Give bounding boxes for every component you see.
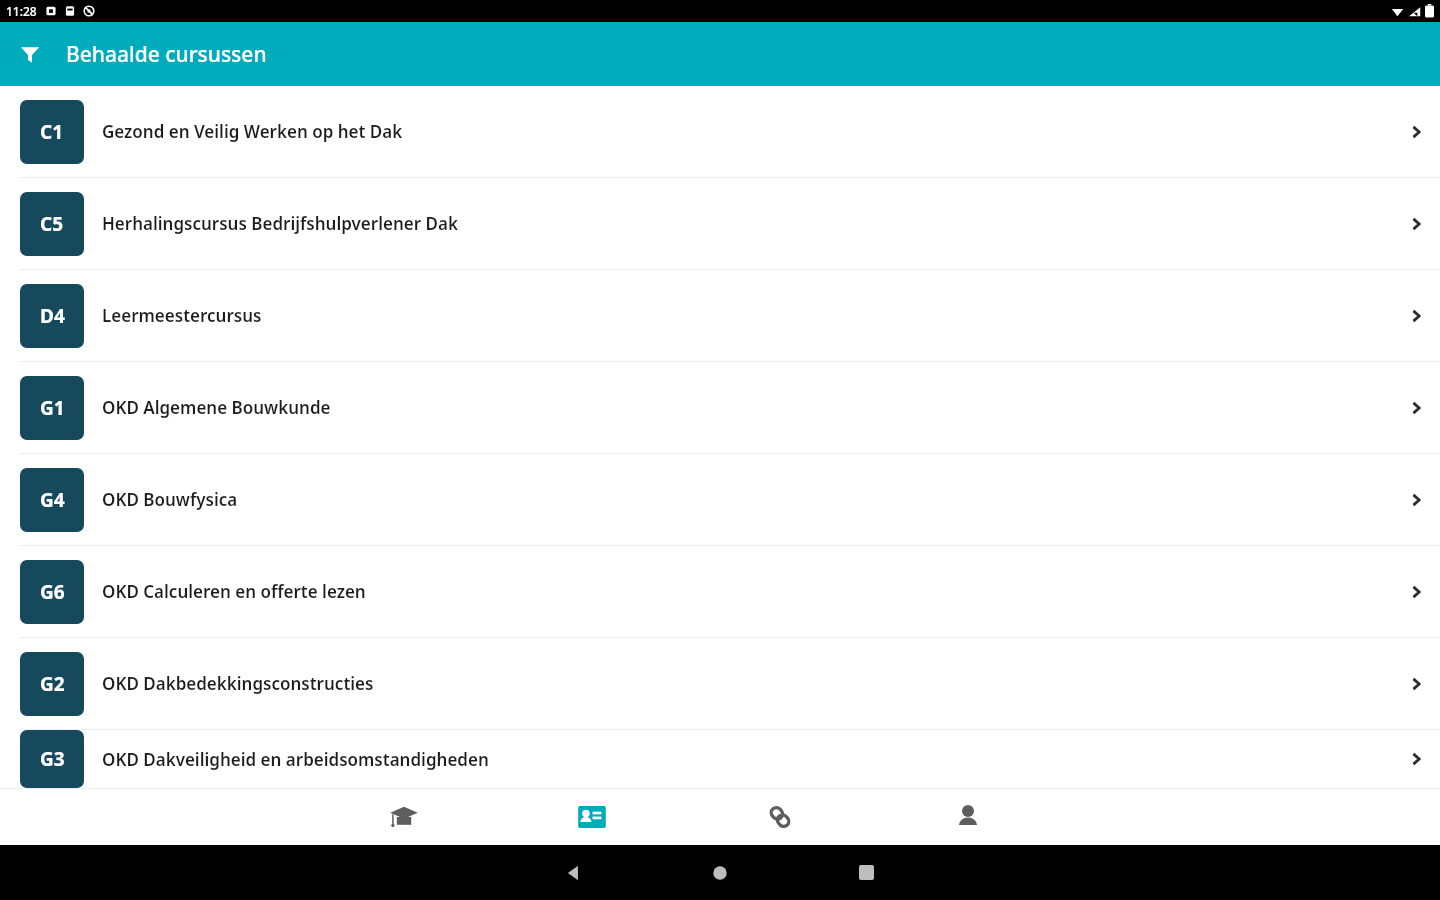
- button[interactable]: Recents: [838, 845, 894, 900]
- button[interactable]: Back: [546, 845, 602, 900]
- button[interactable]: G6: [0, 546, 1440, 637]
- button[interactable]: Filter: [6, 30, 54, 78]
- button[interactable]: G2: [0, 638, 1440, 729]
- staticText: D4: [40, 303, 65, 329]
- staticText: G6: [40, 579, 65, 605]
- button[interactable]: Pas: [548, 789, 636, 845]
- button[interactable]: Opleidingen: [360, 789, 448, 845]
- button[interactable]: D4: [0, 270, 1440, 361]
- staticText: Leermeestercursus: [102, 304, 262, 327]
- staticText: C5: [40, 211, 64, 237]
- staticText: OKD Calculeren en offerte lezen: [102, 580, 366, 603]
- button[interactable]: Profiel: [924, 789, 1012, 845]
- button[interactable]: G3: [0, 730, 1440, 788]
- staticText: Behaalde cursussen: [66, 40, 267, 69]
- staticText: Gezond en Veilig Werken op het Dak: [102, 120, 403, 143]
- staticText: G2: [40, 671, 65, 697]
- button[interactable]: G4: [0, 454, 1440, 545]
- staticText: 11:28: [6, 3, 37, 19]
- staticText: G3: [40, 746, 65, 772]
- button[interactable]: C5: [0, 178, 1440, 269]
- staticText: G1: [40, 395, 65, 421]
- button[interactable]: C1: [0, 86, 1440, 177]
- staticText: OKD Dakveiligheid en arbeidsomstandighed…: [102, 748, 489, 771]
- staticText: OKD Bouwfysica: [102, 488, 238, 511]
- button[interactable]: Home: [692, 845, 748, 900]
- staticText: Herhalingscursus Bedrijfshulpverlener Da…: [102, 212, 458, 235]
- staticText: OKD Dakbedekkingsconstructies: [102, 672, 374, 695]
- button[interactable]: G1: [0, 362, 1440, 453]
- staticText: C1: [40, 119, 64, 145]
- staticText: G4: [40, 487, 65, 513]
- button[interactable]: Links: [736, 789, 824, 845]
- staticText: OKD Algemene Bouwkunde: [102, 396, 331, 419]
